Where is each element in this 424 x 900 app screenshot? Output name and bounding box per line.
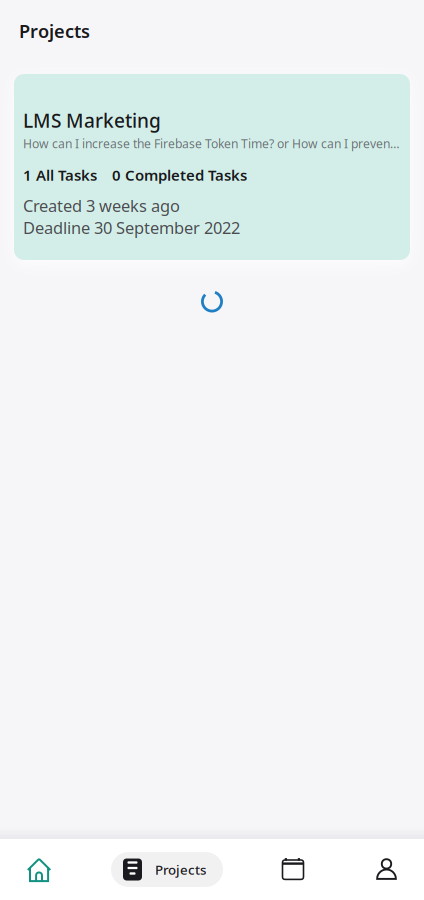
button[interactable]: Projects	[79, 839, 255, 900]
staticText: 1 All Tasks	[23, 165, 97, 185]
button[interactable]: Home	[0, 839, 79, 900]
button[interactable]: Calendar	[255, 839, 331, 900]
staticText: Deadline 30 September 2022	[23, 217, 240, 238]
staticText: 0 Completed Tasks	[112, 165, 247, 185]
button[interactable]: Profile	[331, 839, 424, 900]
staticText: How can I increase the Firebase Token Ti…	[23, 135, 401, 151]
staticText: LMS Marketing	[23, 108, 161, 133]
staticText: Projects	[155, 861, 206, 878]
staticText: Projects	[19, 19, 90, 43]
staticText: Created 3 weeks ago	[23, 195, 180, 217]
button[interactable]: LMS Marketing	[14, 74, 410, 260]
